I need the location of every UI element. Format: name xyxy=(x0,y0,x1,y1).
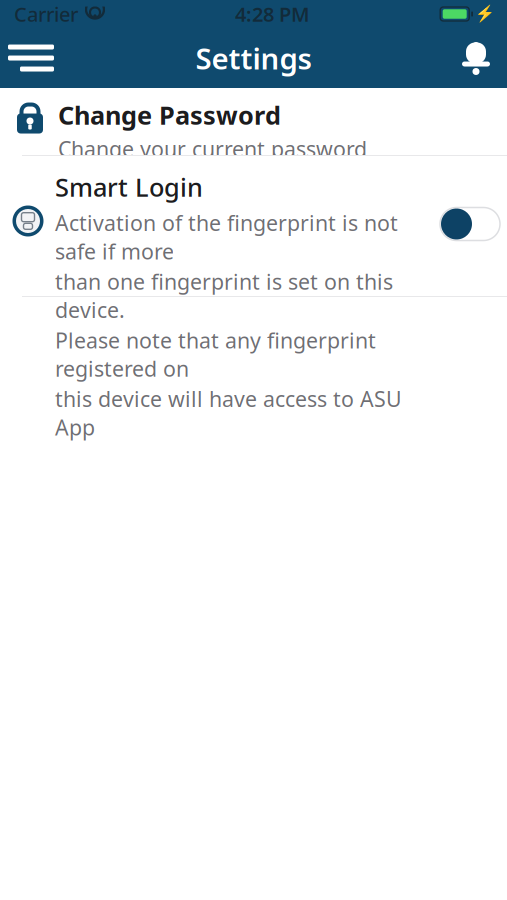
button[interactable]: Change Password xyxy=(0,88,507,155)
staticText: Change your current password xyxy=(58,135,367,163)
staticText: Smart Login xyxy=(55,170,203,204)
staticText: 4:28 PM xyxy=(235,1,310,27)
staticText: than one fingerprint is set on this devi… xyxy=(55,267,393,324)
staticText: Activation of the fingerprint is not saf… xyxy=(55,209,398,265)
button[interactable]: Smart Login toggle xyxy=(433,194,507,254)
staticText: ⚡ xyxy=(475,5,495,23)
staticText: Carrier xyxy=(14,1,78,27)
button[interactable]: Notifications xyxy=(445,28,507,88)
staticText: Change Password xyxy=(58,98,281,132)
staticText: Please note that any fingerprint registe… xyxy=(55,326,376,383)
staticText: this device will have access to ASU App xyxy=(55,385,402,441)
staticText: Settings xyxy=(195,38,311,77)
button[interactable]: Menu xyxy=(0,28,62,88)
